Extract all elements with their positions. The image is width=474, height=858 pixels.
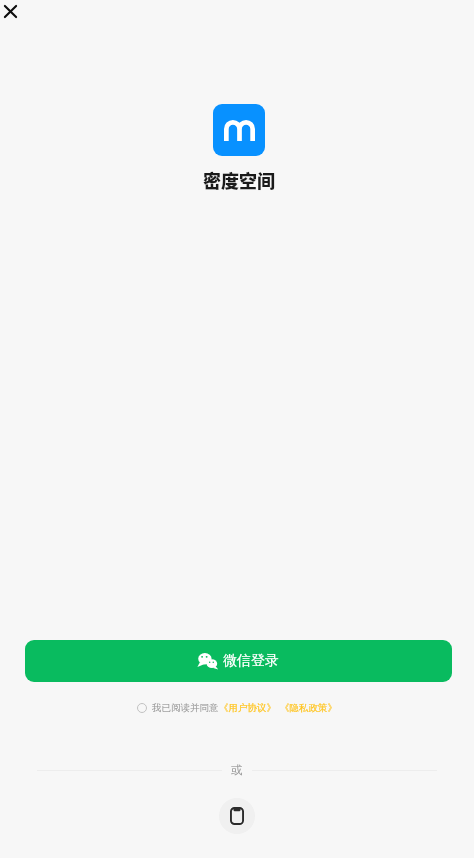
staticText: 《用户协议》 [219, 702, 276, 714]
button[interactable]: 微信登录 [25, 640, 452, 682]
staticText: 微信登录 [223, 652, 279, 670]
button[interactable]: Phone login [219, 798, 255, 834]
staticText: 我已阅读并同意 [152, 702, 219, 714]
staticText: 《隐私政策》 [280, 702, 337, 714]
staticText: 密度空间 [203, 167, 275, 193]
button[interactable]: Close [0, 0, 36, 36]
button[interactable]: 我已阅读并同意 [137, 702, 337, 714]
staticText: 或 [231, 763, 243, 777]
